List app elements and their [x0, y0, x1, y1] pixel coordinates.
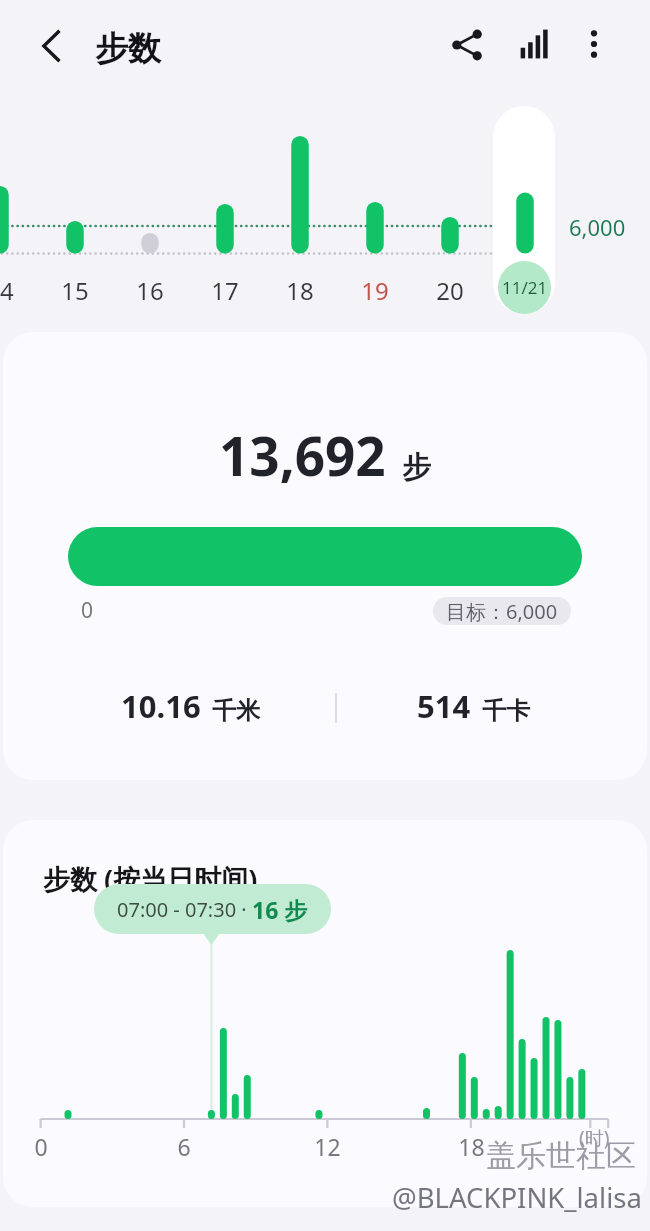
staticText: 步	[402, 449, 431, 486]
button[interactable]: Share	[441, 19, 493, 71]
button[interactable]: Back	[26, 20, 78, 72]
staticText: 15	[61, 274, 89, 307]
staticText: @BLACKPINK_lalisa	[392, 1179, 642, 1216]
staticText: 盖乐世社区	[486, 1137, 636, 1175]
staticText: 13,692	[219, 419, 386, 491]
staticText: 步数 (按当日时间)	[43, 860, 258, 897]
staticText: 0	[81, 596, 94, 625]
staticText: 20	[436, 274, 464, 307]
staticText: 18	[286, 274, 314, 307]
staticText: 6	[177, 1131, 191, 1162]
staticText: 11/21	[502, 276, 548, 299]
button[interactable]: 11/21	[498, 261, 551, 314]
staticText: 18	[458, 1131, 485, 1162]
staticText: 千卡	[482, 696, 530, 726]
staticText: 16 步	[252, 894, 308, 925]
staticText: 07:00 - 07:30 ·	[117, 896, 252, 923]
staticText: 16	[136, 274, 164, 307]
staticText: 514	[417, 685, 471, 727]
staticText: 目标：6,000	[446, 598, 558, 625]
staticText: 6,000	[569, 212, 626, 242]
staticText: 17	[211, 274, 239, 307]
staticText: 14	[0, 274, 14, 307]
button[interactable]: 07:00 - 07:30, 16 steps	[117, 884, 308, 934]
button[interactable]: Chart view	[508, 18, 560, 70]
staticText: 步数	[95, 28, 161, 70]
button[interactable]: 10.16	[58, 680, 323, 732]
button[interactable]: More options	[568, 18, 620, 70]
staticText: 10.16	[121, 685, 201, 727]
staticText: 19	[361, 274, 389, 307]
button[interactable]: 13,692	[3, 332, 647, 780]
button[interactable]: 步数 (按当日时间)	[3, 820, 647, 1207]
button[interactable]: Nov 21 selected	[493, 106, 555, 314]
staticText: 12	[314, 1131, 341, 1162]
button[interactable]: 514	[343, 680, 603, 732]
staticText: 千米	[212, 696, 260, 726]
staticText: 0	[34, 1131, 48, 1162]
staticText: (时)	[579, 1125, 610, 1151]
other: Goal 6,000	[446, 597, 558, 625]
